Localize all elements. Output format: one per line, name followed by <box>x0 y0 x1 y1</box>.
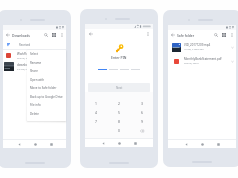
button[interactable]: More options <box>58 31 66 39</box>
staticText: Next <box>116 86 123 90</box>
staticText: Enter PIN <box>111 55 127 60</box>
button[interactable]: 1 <box>85 99 107 108</box>
staticText: 9 <box>141 119 143 124</box>
staticText: 1 <box>95 101 97 106</box>
staticText: 2 <box>118 101 120 106</box>
staticText: 5 <box>118 110 120 115</box>
button[interactable]: Search <box>212 31 220 39</box>
staticText: VID_20171209.mp4 <box>184 43 211 47</box>
button[interactable]: Select <box>27 50 66 58</box>
button[interactable]: Home <box>194 140 210 148</box>
button[interactable]: MonthlyBankStatement.pdf <box>168 54 236 68</box>
button[interactable]: 0 <box>107 126 130 135</box>
staticText: 390 KB, Sep 9 <box>184 62 199 65</box>
staticText: 7 <box>95 119 97 124</box>
button[interactable]: Recents <box>127 139 143 147</box>
button[interactable]: Back up to Google Drive <box>27 93 66 101</box>
button[interactable]: 2 <box>107 99 130 108</box>
button[interactable]: Move to Safe folder <box>27 84 66 92</box>
button[interactable]: File info <box>27 101 66 109</box>
staticText: 255 KB, 4 m <box>17 57 30 60</box>
button[interactable]: 5 <box>107 108 130 117</box>
staticText: Move to Safe folder <box>30 86 57 90</box>
button[interactable]: Back <box>169 31 177 39</box>
button[interactable]: 7 <box>85 117 107 126</box>
staticText: Downloads <box>12 33 31 38</box>
staticText: 8 <box>118 119 120 124</box>
button[interactable]: More options <box>228 31 236 39</box>
button[interactable]: Backspace <box>130 126 153 135</box>
button[interactable]: Back <box>87 30 95 38</box>
button[interactable]: WorkFlush.mp3 <box>3 50 66 61</box>
staticText: File info <box>30 103 41 107</box>
button[interactable]: Open with <box>27 76 66 84</box>
button[interactable]: 3 <box>130 99 153 108</box>
staticText: MonthlyBankStatement.pdf <box>184 57 222 61</box>
staticText: Select <box>30 52 39 56</box>
staticText: Share <box>30 69 38 73</box>
button[interactable]: Back <box>4 31 12 39</box>
button[interactable]: Home <box>111 139 127 147</box>
button[interactable]: 6 <box>130 108 153 117</box>
button[interactable]: Search <box>42 31 50 39</box>
staticText: 10 MB, 3 days ago <box>184 48 204 51</box>
staticText: 3.9 MB, 2 h <box>17 68 29 71</box>
staticText: Received <box>19 43 31 47</box>
button[interactable]: 8 <box>107 117 130 126</box>
staticText: Back up to Google Drive <box>30 95 63 99</box>
button[interactable]: VID_20171209.mp4 <box>168 40 236 54</box>
button[interactable]: Share <box>27 67 66 75</box>
staticText: 6 <box>141 110 143 115</box>
button[interactable]: Back <box>178 140 194 148</box>
button[interactable]: Next <box>88 83 150 92</box>
button[interactable]: More <box>229 44 235 50</box>
button[interactable]: Recents <box>43 140 59 148</box>
button[interactable]: More <box>229 58 235 64</box>
staticText: WorkFlush.mp3 <box>17 52 39 56</box>
staticText: 4 <box>95 110 97 115</box>
staticText: Rename <box>30 61 42 65</box>
button[interactable]: Recents <box>210 140 226 148</box>
staticText: download.pdf <box>17 63 36 67</box>
button[interactable]: Home <box>27 140 43 148</box>
staticText: 0 <box>118 128 120 133</box>
staticText: 3 <box>141 101 143 106</box>
button[interactable]: download.pdf <box>3 61 66 72</box>
button[interactable]: Back <box>95 139 111 147</box>
staticText: Open with <box>30 78 45 82</box>
button[interactable]: Grid view <box>220 31 228 39</box>
staticText: Delete <box>30 112 39 116</box>
button[interactable]: Rename <box>27 59 66 67</box>
button[interactable]: Back <box>11 140 27 148</box>
button[interactable]: More options <box>144 30 152 38</box>
staticText: Safe folder <box>177 33 195 37</box>
button[interactable]: 9 <box>130 117 153 126</box>
button[interactable]: Delete <box>27 110 66 118</box>
button[interactable]: Grid view <box>50 31 58 39</box>
button[interactable]: 4 <box>85 108 107 117</box>
